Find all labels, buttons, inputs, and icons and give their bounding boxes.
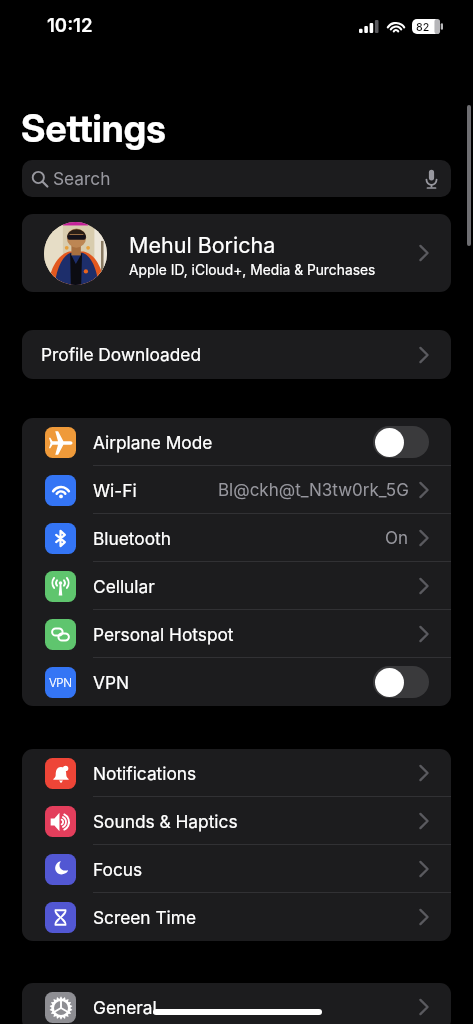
staticText: Bl@ckh@t_N3tw0rk_5G bbox=[218, 480, 409, 501]
staticText: Mehul Boricha bbox=[129, 232, 276, 258]
button[interactable]: Profile Downloaded bbox=[22, 330, 451, 379]
button[interactable]: Toggle VPN bbox=[373, 666, 429, 698]
button[interactable]: VPN bbox=[22, 658, 451, 706]
staticText: Wi-Fi bbox=[93, 480, 137, 501]
staticText: VPN bbox=[49, 676, 72, 690]
staticText: Screen Time bbox=[93, 907, 197, 928]
button[interactable]: Wi-Fi bbox=[22, 466, 451, 514]
staticText: On bbox=[385, 528, 409, 549]
staticText: Search bbox=[53, 168, 111, 189]
button[interactable]: Toggle Airplane Mode bbox=[373, 426, 429, 458]
button[interactable]: Search bbox=[22, 160, 451, 197]
button[interactable]: Sounds & Haptics bbox=[22, 797, 451, 845]
staticText: Focus bbox=[93, 859, 143, 880]
button[interactable]: Cellular bbox=[22, 562, 451, 610]
staticText: Settings bbox=[21, 106, 166, 151]
staticText: Cellular bbox=[93, 576, 155, 597]
button[interactable]: Screen Time bbox=[22, 893, 451, 941]
button[interactable]: Airplane Mode bbox=[22, 418, 451, 466]
staticText: Personal Hotspot bbox=[93, 624, 234, 645]
staticText: Notifications bbox=[93, 763, 197, 784]
button[interactable]: Mehul Boricha bbox=[22, 214, 451, 292]
staticText: VPN bbox=[93, 672, 130, 693]
staticText: Bluetooth bbox=[93, 528, 171, 549]
button[interactable]: Personal Hotspot bbox=[22, 610, 451, 658]
staticText: Profile Downloaded bbox=[41, 344, 201, 365]
staticText: 82 bbox=[416, 21, 430, 34]
button[interactable]: Focus bbox=[22, 845, 451, 893]
staticText: 10:12 bbox=[47, 14, 93, 37]
staticText: Airplane Mode bbox=[93, 432, 213, 453]
button[interactable]: Bluetooth bbox=[22, 514, 451, 562]
staticText: Sounds & Haptics bbox=[93, 811, 238, 832]
button[interactable]: General bbox=[22, 983, 451, 1024]
button[interactable]: Notifications bbox=[22, 749, 451, 797]
staticText: General bbox=[93, 997, 157, 1018]
staticText: Apple ID, iCloud+, Media & Purchases bbox=[129, 262, 376, 279]
